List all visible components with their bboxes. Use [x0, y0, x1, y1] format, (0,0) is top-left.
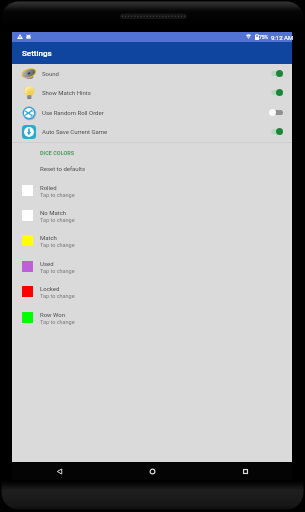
staticText: 75%	[259, 34, 269, 40]
button[interactable]: Row Won	[12, 305, 292, 330]
button[interactable]: Rolled	[12, 178, 292, 203]
staticText: Settings	[22, 49, 52, 58]
staticText: No Match	[40, 209, 67, 216]
button[interactable]: Reset to defaults	[12, 160, 292, 176]
button[interactable]: Locked	[12, 279, 292, 304]
button[interactable]: No Match	[12, 203, 292, 228]
staticText: Tap to change	[40, 293, 75, 299]
staticText: Locked	[40, 285, 60, 292]
staticText: Sound	[42, 70, 59, 77]
staticText: Show Match Hints	[42, 89, 91, 96]
button[interactable]: Sound	[12, 64, 292, 83]
button[interactable]: Match	[12, 228, 292, 253]
staticText: DICE COLORS	[40, 150, 75, 156]
button[interactable]: Show Match Hints	[12, 83, 292, 102]
button[interactable]: Home	[106, 462, 199, 480]
button[interactable]: Use Random Roll Order	[12, 103, 292, 122]
staticText: Tap to change	[40, 242, 75, 248]
staticText: Tap to change	[40, 319, 75, 325]
button[interactable]: Recents	[199, 462, 292, 480]
button[interactable]: Auto Save Current Game	[12, 122, 292, 141]
staticText: Use Random Roll Order	[42, 109, 104, 116]
staticText: Tap to change	[40, 268, 75, 274]
staticText: Used	[40, 260, 54, 267]
staticText: Tap to change	[40, 192, 75, 198]
button[interactable]: Back	[12, 462, 106, 480]
button[interactable]: Used	[12, 254, 292, 279]
staticText: Match	[40, 234, 57, 241]
staticText: Auto Save Current Game	[42, 128, 108, 135]
staticText: 9:12 AM	[271, 34, 294, 41]
staticText: Row Won	[40, 311, 66, 318]
staticText: Rolled	[40, 184, 57, 191]
staticText: Tap to change	[40, 217, 75, 223]
staticText: Reset to defaults	[40, 165, 86, 172]
